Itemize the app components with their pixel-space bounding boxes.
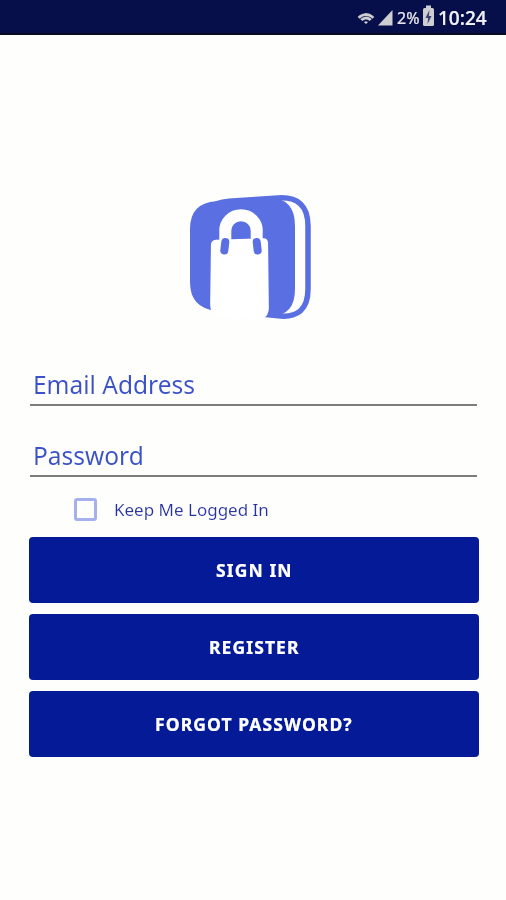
staticText: SIGN IN [216, 558, 293, 582]
staticText: REGISTER [209, 635, 300, 659]
staticText: Password [33, 439, 144, 472]
button[interactable] [30, 366, 477, 406]
staticText: 2% [397, 7, 420, 29]
staticText: Email Address [33, 368, 195, 401]
staticText: FORGOT PASSWORD? [155, 712, 353, 736]
button[interactable]: SIGN IN [29, 537, 479, 603]
button[interactable]: REGISTER [29, 614, 479, 680]
button[interactable]: FORGOT PASSWORD? [29, 691, 479, 757]
staticText: Keep Me Logged In [114, 498, 269, 521]
button[interactable]: Keep Me Logged In [74, 498, 269, 521]
button[interactable] [30, 437, 477, 477]
staticText: 10:24 [438, 5, 487, 31]
